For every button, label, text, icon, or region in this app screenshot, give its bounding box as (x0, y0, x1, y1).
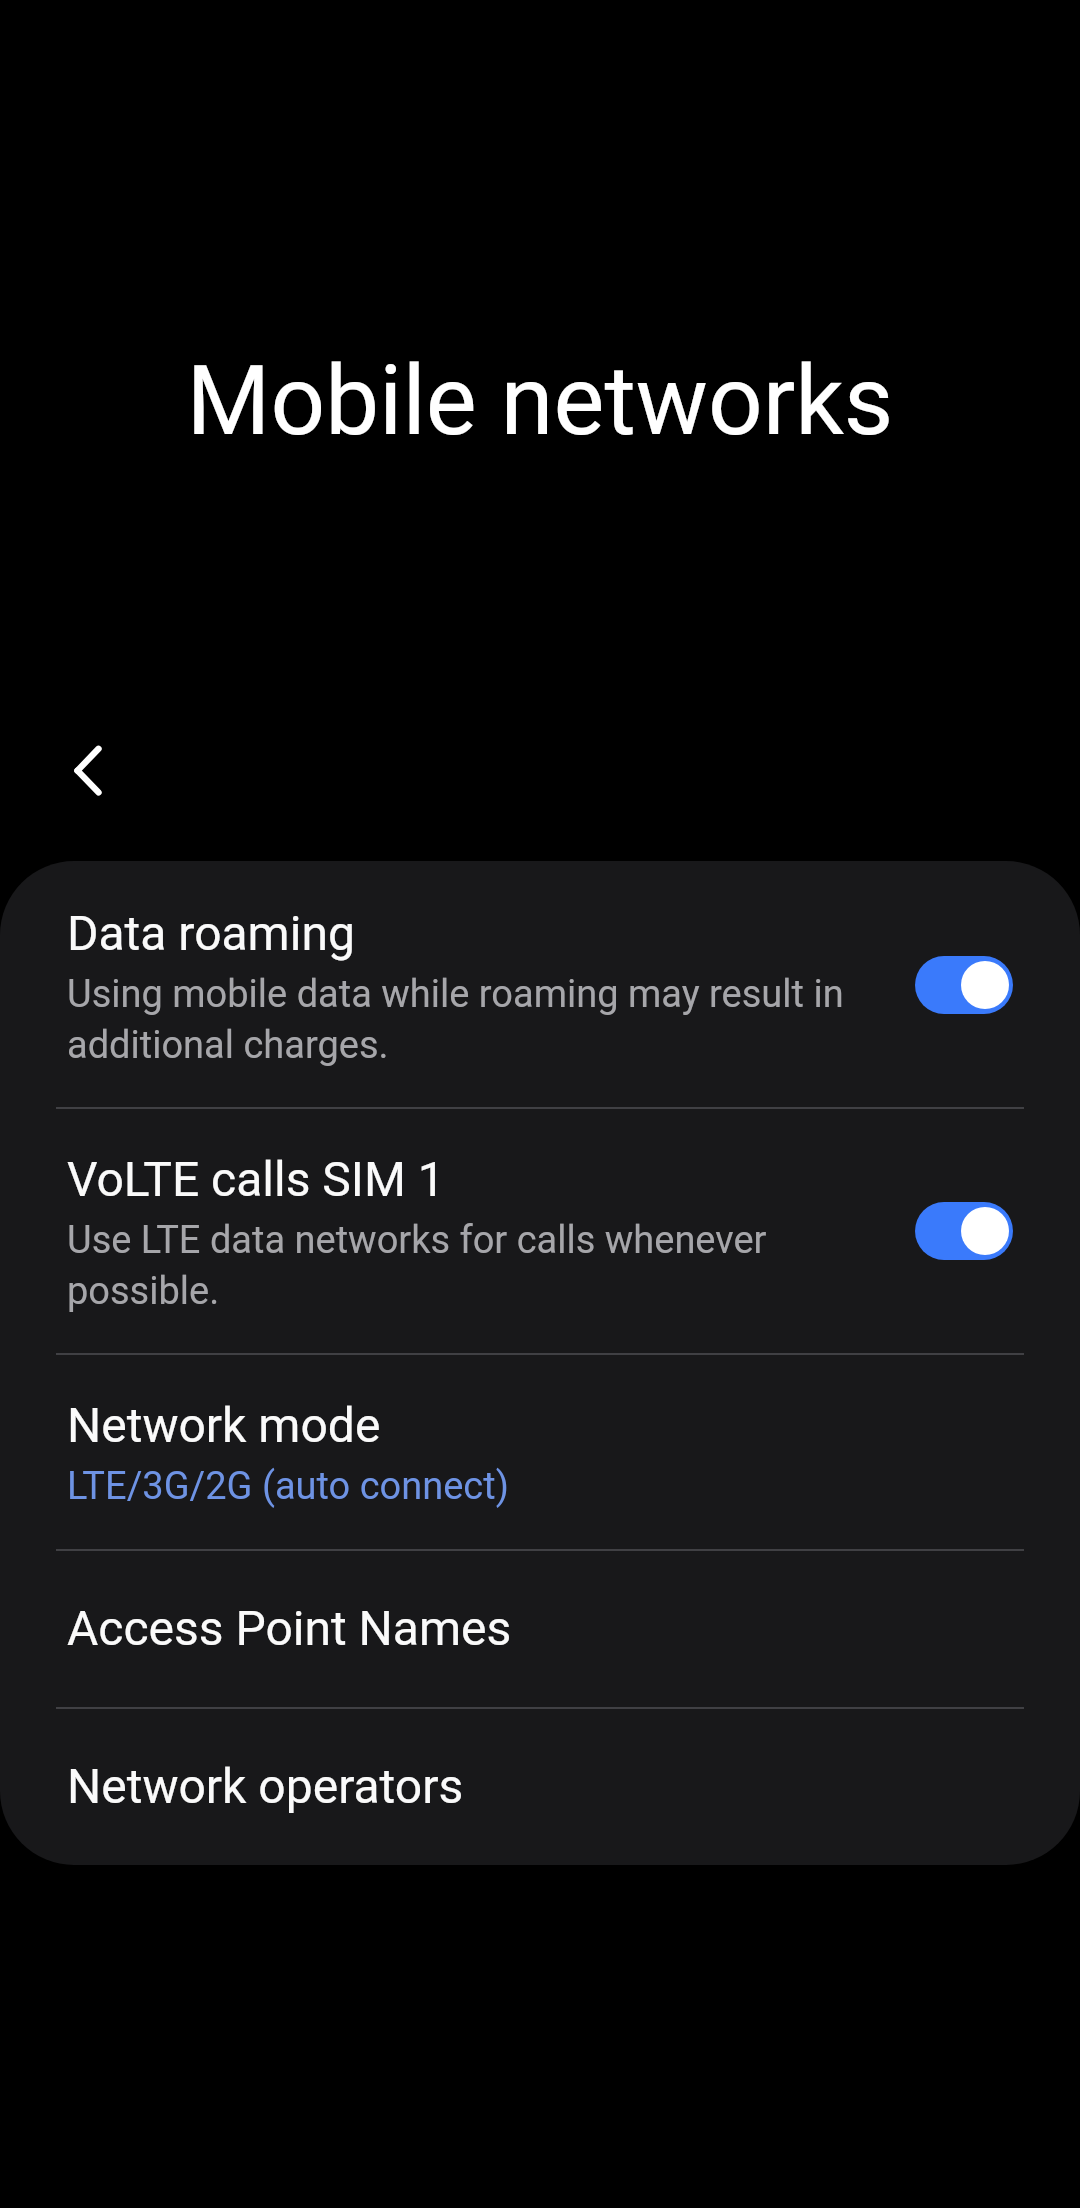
staticText: VoLTE calls SIM 1 (67, 1151, 867, 1207)
staticText: Network mode (67, 1397, 967, 1453)
button[interactable]: VoLTE calls SIM 1, on (915, 1202, 1013, 1260)
button[interactable]: Data roaming (0, 861, 1080, 1108)
button[interactable]: Access Point Names (0, 1550, 1080, 1708)
staticText: Access Point Names (67, 1600, 967, 1656)
button[interactable]: Network mode (0, 1354, 1080, 1550)
staticText: LTE/3G/2G (auto connect) (67, 1464, 967, 1509)
button[interactable]: VoLTE calls SIM 1 (0, 1108, 1080, 1354)
staticText: Network operators (67, 1758, 967, 1814)
button[interactable]: Network operators (0, 1708, 1080, 1865)
staticText: Using mobile data while roaming may resu… (67, 972, 867, 1067)
button[interactable]: Navigate up (40, 723, 136, 819)
staticText: Use LTE data networks for calls whenever… (67, 1218, 867, 1313)
staticText: Data roaming (67, 905, 867, 961)
button[interactable]: Data roaming, on (915, 956, 1013, 1014)
staticText: Mobile networks (0, 345, 1080, 458)
